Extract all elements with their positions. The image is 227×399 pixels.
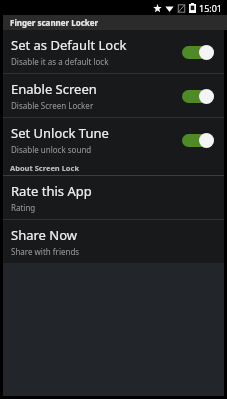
button[interactable]: Rate this App [3,176,224,219]
staticText: Enable Screen [11,80,97,98]
staticText: Disable unlock sound [11,144,92,155]
button[interactable]: Toggle setting [182,44,214,60]
staticText: 15:01 [199,2,223,14]
staticText: Disable Screen Locker [11,100,94,111]
button[interactable]: Set Unlock Tune [3,118,224,161]
staticText: Share with friends [11,246,80,257]
staticText: Finger scanner Locker [10,17,99,28]
staticText: Rate this App [11,182,92,200]
button[interactable]: Set as Default Lock [3,30,224,73]
staticText: About Screen Lock [10,163,80,173]
button[interactable]: Share Now [3,220,224,263]
button[interactable]: Enable Screen [3,74,224,117]
button[interactable]: Toggle setting [182,132,214,148]
staticText: Share Now [11,226,77,244]
staticText: Disable it as a default lock [11,56,109,67]
staticText: Set Unlock Tune [11,124,109,142]
staticText: Rating [11,202,36,213]
staticText: Set as Default Lock [11,36,127,54]
button[interactable]: Toggle setting [182,88,214,104]
